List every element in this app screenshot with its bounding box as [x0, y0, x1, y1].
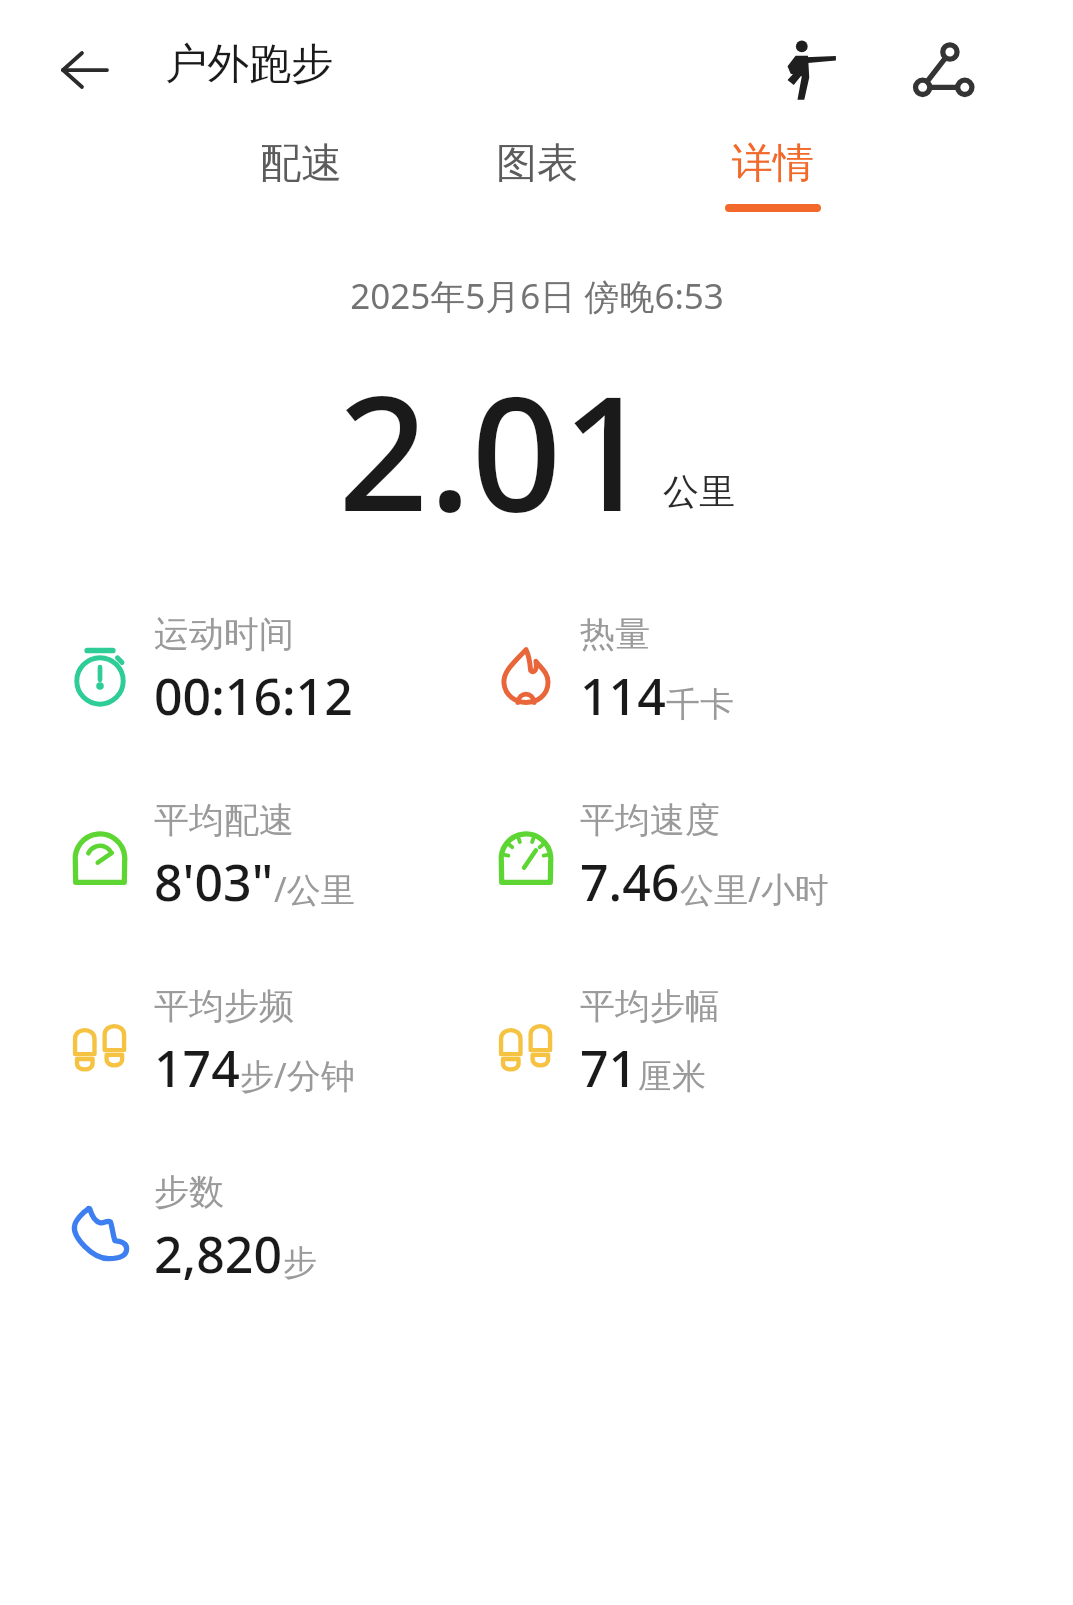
- staticText: 公里: [663, 469, 735, 514]
- staticText: 71: [580, 1034, 638, 1102]
- staticText: 详情: [732, 138, 814, 190]
- staticText: 公里/小时: [680, 866, 829, 912]
- staticText: 2025年5月6日 傍晚6:53: [350, 272, 724, 320]
- staticText: 平均步频: [154, 984, 294, 1028]
- staticText: 图表: [496, 138, 578, 190]
- button[interactable]: 步数: [62, 1170, 317, 1288]
- staticText: 步: [283, 1241, 317, 1284]
- staticText: /公里: [274, 866, 355, 912]
- button[interactable]: Exercise type: [766, 28, 850, 112]
- button[interactable]: 平均步频: [62, 984, 355, 1102]
- staticText: 平均配速: [154, 798, 294, 842]
- button[interactable]: 平均步幅: [488, 984, 720, 1102]
- button[interactable]: 平均配速: [62, 798, 355, 916]
- staticText: 2.01: [338, 342, 653, 540]
- staticText: 8'03": [154, 848, 274, 916]
- button[interactable]: 图表: [467, 138, 607, 204]
- button[interactable]: 平均速度: [488, 798, 829, 916]
- staticText: 步数: [154, 1170, 224, 1214]
- staticText: 配速: [260, 138, 342, 190]
- staticText: 步/分钟: [240, 1052, 355, 1098]
- staticText: 00:16:12: [154, 662, 353, 730]
- button[interactable]: 运动时间: [62, 612, 353, 730]
- staticText: 2,820: [154, 1220, 283, 1288]
- button[interactable]: 详情: [703, 138, 843, 212]
- staticText: 千卡: [666, 683, 734, 726]
- button[interactable]: 热量: [488, 612, 734, 730]
- staticText: 7.46: [580, 848, 680, 916]
- staticText: 运动时间: [154, 612, 294, 656]
- staticText: 174: [154, 1034, 240, 1102]
- staticText: 户外跑步: [165, 38, 333, 91]
- button[interactable]: 配速: [231, 138, 371, 204]
- staticText: 热量: [580, 612, 650, 656]
- button[interactable]: Share: [898, 28, 982, 112]
- staticText: 平均速度: [580, 798, 720, 842]
- staticText: 厘米: [638, 1055, 706, 1098]
- staticText: 平均步幅: [580, 984, 720, 1028]
- staticText: 114: [580, 662, 666, 730]
- button[interactable]: Back: [48, 34, 120, 106]
